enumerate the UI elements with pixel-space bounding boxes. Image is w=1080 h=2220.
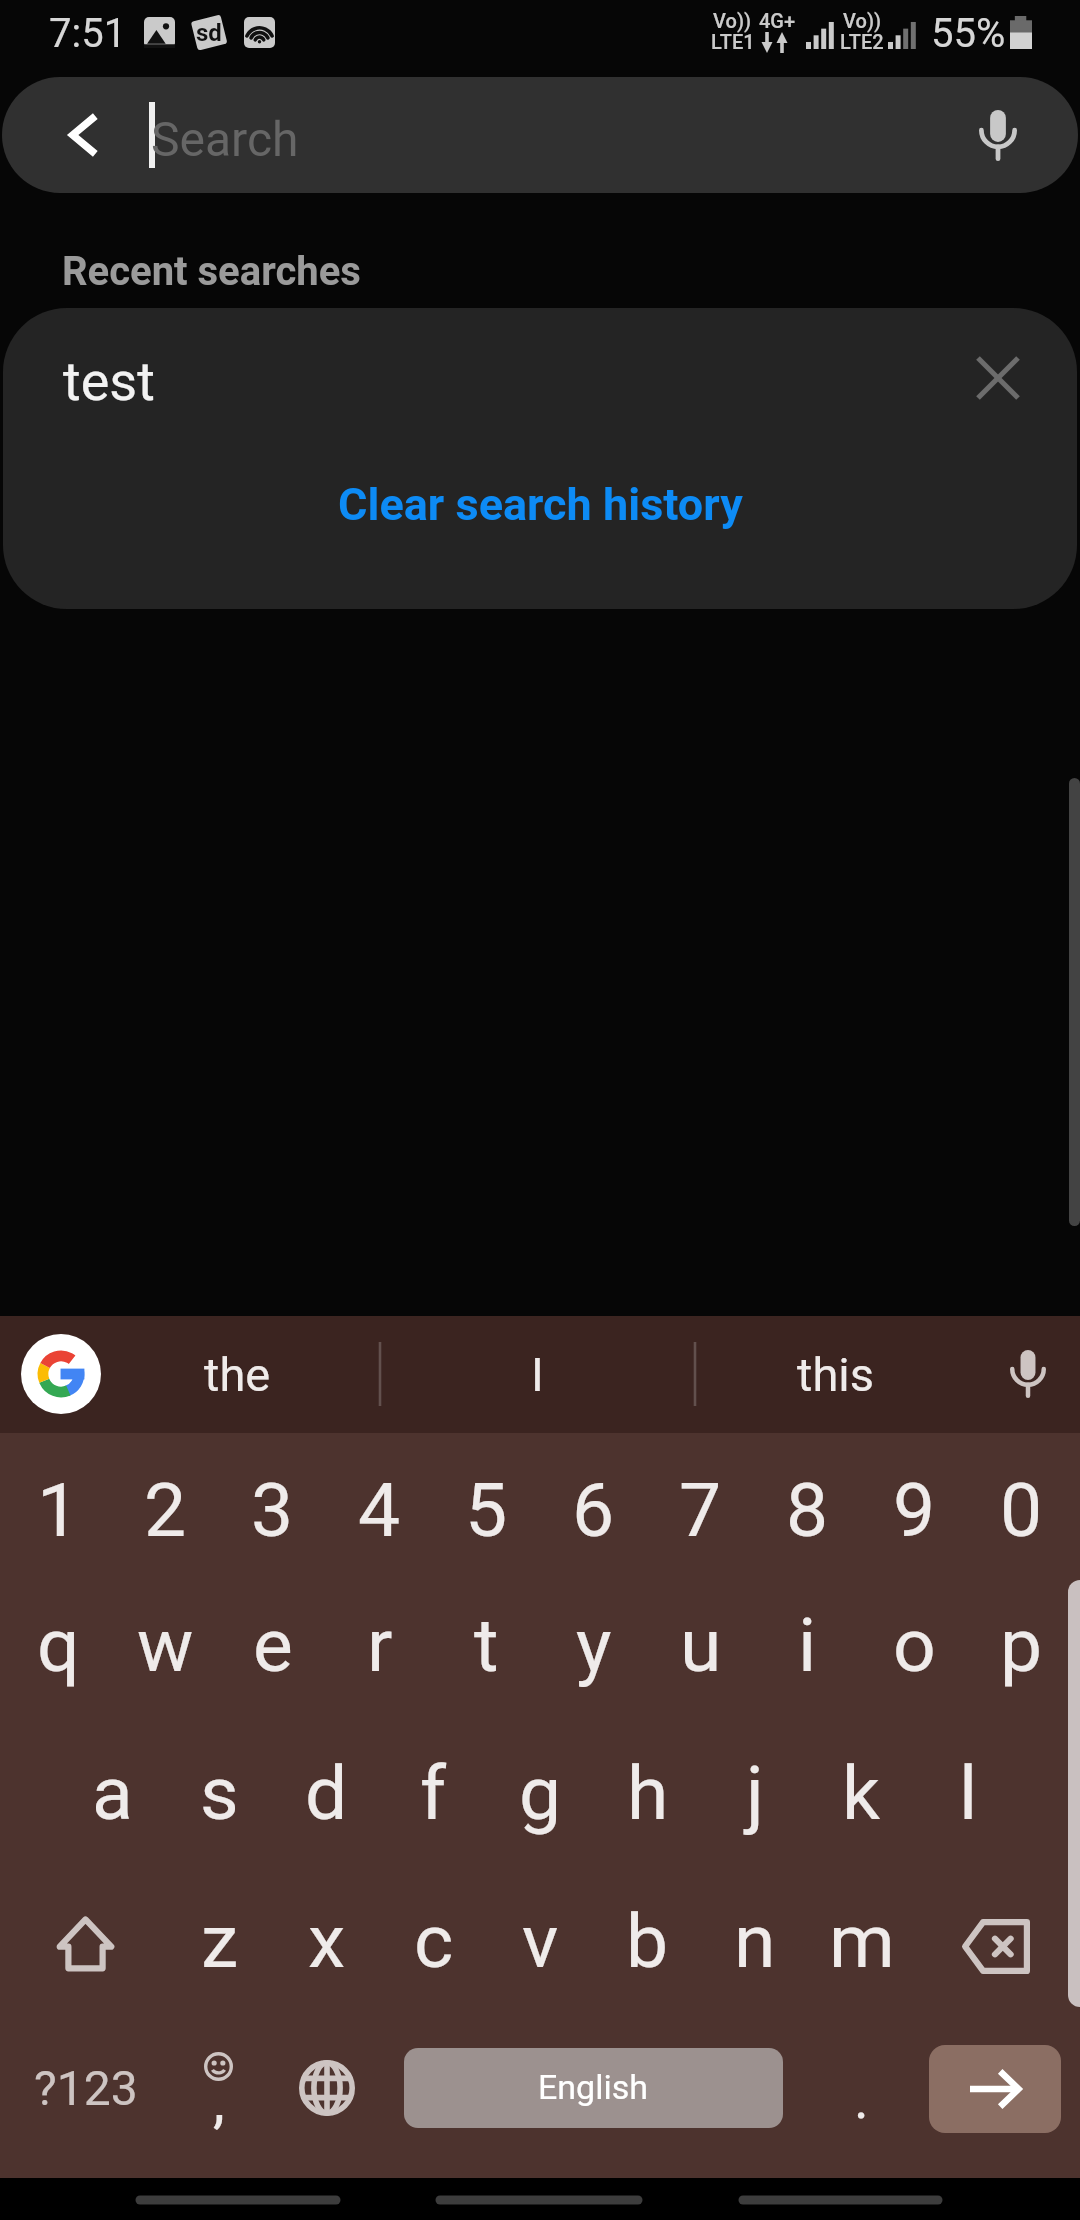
- button[interactable]: d: [273, 1722, 380, 1868]
- button[interactable]: Change language: [273, 2015, 380, 2162]
- button[interactable]: q: [5, 1578, 112, 1722]
- button[interactable]: Voice input: [992, 1338, 1064, 1410]
- button[interactable]: ?123: [5, 2015, 166, 2162]
- button[interactable]: Clear search history: [3, 456, 1077, 609]
- button[interactable]: 5: [433, 1433, 540, 1578]
- staticText: j: [746, 1749, 764, 1837]
- staticText: sd: [196, 19, 222, 47]
- staticText: Vo)): [713, 9, 752, 32]
- staticText: p: [1000, 1601, 1043, 1689]
- button[interactable]: 9: [861, 1433, 968, 1578]
- button[interactable]: 6: [540, 1433, 647, 1578]
- button[interactable]: w: [112, 1578, 219, 1722]
- staticText: 1: [37, 1466, 80, 1554]
- button[interactable]: s: [166, 1722, 273, 1868]
- staticText: 7: [679, 1466, 722, 1554]
- staticText: c: [414, 1897, 454, 1985]
- button[interactable]: v: [487, 1868, 594, 2015]
- staticText: o: [893, 1601, 936, 1689]
- button[interactable]: Back: [2, 77, 1078, 193]
- button[interactable]: i: [754, 1578, 861, 1722]
- staticText: a: [92, 1749, 133, 1837]
- button[interactable]: y: [540, 1578, 647, 1722]
- staticText: i: [798, 1601, 817, 1689]
- staticText: g: [519, 1749, 562, 1837]
- button[interactable]: Shift: [5, 1868, 166, 2015]
- staticText: x: [308, 1897, 346, 1985]
- button[interactable]: p: [968, 1578, 1075, 1722]
- button[interactable]: o: [861, 1578, 968, 1722]
- staticText: q: [37, 1601, 80, 1689]
- button[interactable]: b: [594, 1868, 701, 2015]
- button[interactable]: l: [915, 1722, 1022, 1868]
- staticText: h: [627, 1749, 669, 1837]
- staticText: 2: [144, 1466, 187, 1554]
- staticText: u: [680, 1601, 722, 1689]
- button[interactable]: Voice search: [956, 93, 1040, 177]
- staticText: LTE2: [840, 30, 884, 53]
- button[interactable]: z: [166, 1868, 273, 2015]
- button[interactable]: 4: [326, 1433, 433, 1578]
- button[interactable]: n: [701, 1868, 808, 2015]
- button[interactable]: Backspace: [915, 1868, 1076, 2015]
- staticText: Recent searches: [62, 248, 361, 295]
- staticText: y: [576, 1601, 612, 1689]
- button[interactable]: 2: [112, 1433, 219, 1578]
- button[interactable]: 1: [5, 1433, 112, 1578]
- button[interactable]: English: [404, 2048, 783, 2128]
- staticText: m: [829, 1897, 895, 1985]
- staticText: 3: [251, 1466, 294, 1554]
- button[interactable]: j: [701, 1722, 808, 1868]
- button[interactable]: 0: [968, 1433, 1075, 1578]
- staticText: 0: [1000, 1466, 1043, 1554]
- button[interactable]: the: [125, 1316, 350, 1433]
- staticText: n: [734, 1897, 776, 1985]
- staticText: e: [253, 1601, 293, 1689]
- button[interactable]: e: [219, 1578, 326, 1722]
- staticText: r: [367, 1601, 393, 1689]
- button[interactable]: Remove search: [960, 340, 1036, 416]
- button[interactable]: c: [380, 1868, 487, 2015]
- button[interactable]: Google: [20, 1333, 102, 1415]
- button[interactable]: .: [808, 2015, 915, 2162]
- button[interactable]: 3: [219, 1433, 326, 1578]
- button[interactable]: h: [594, 1722, 701, 1868]
- button[interactable]: I: [380, 1316, 695, 1433]
- staticText: Vo)): [843, 9, 882, 32]
- staticText: k: [842, 1749, 881, 1837]
- button[interactable]: r: [326, 1578, 433, 1722]
- button[interactable]: m: [808, 1868, 915, 2015]
- staticText: I: [531, 1347, 544, 1402]
- staticText: f: [420, 1749, 447, 1837]
- button[interactable]: k: [808, 1722, 915, 1868]
- staticText: test: [63, 350, 155, 413]
- staticText: d: [305, 1749, 348, 1837]
- staticText: ?123: [34, 2060, 138, 2116]
- button[interactable]: t: [433, 1578, 540, 1722]
- button[interactable]: f: [380, 1722, 487, 1868]
- staticText: s: [200, 1749, 239, 1837]
- staticText: t: [474, 1601, 499, 1689]
- button[interactable]: Enter: [929, 2045, 1061, 2133]
- button[interactable]: 8: [754, 1433, 861, 1578]
- staticText: this: [797, 1347, 874, 1402]
- staticText: .: [854, 2066, 869, 2132]
- staticText: ,: [213, 2065, 225, 2135]
- staticText: English: [538, 2067, 649, 2107]
- button[interactable]: 7: [647, 1433, 754, 1578]
- button[interactable]: Emoji and comma: [166, 2015, 273, 2162]
- button[interactable]: this: [700, 1316, 970, 1433]
- button[interactable]: u: [647, 1578, 754, 1722]
- button[interactable]: Back: [40, 91, 128, 179]
- button[interactable]: x: [273, 1868, 380, 2015]
- button[interactable]: test: [3, 308, 1077, 456]
- staticText: 6: [572, 1466, 615, 1554]
- staticText: 8: [786, 1466, 829, 1554]
- button[interactable]: a: [59, 1722, 166, 1868]
- staticText: 55%: [931, 10, 1006, 57]
- staticText: 4G+: [759, 9, 796, 32]
- staticText: 5: [465, 1466, 508, 1554]
- staticText: w: [137, 1601, 194, 1689]
- button[interactable]: g: [487, 1722, 594, 1868]
- staticText: Search: [151, 111, 299, 167]
